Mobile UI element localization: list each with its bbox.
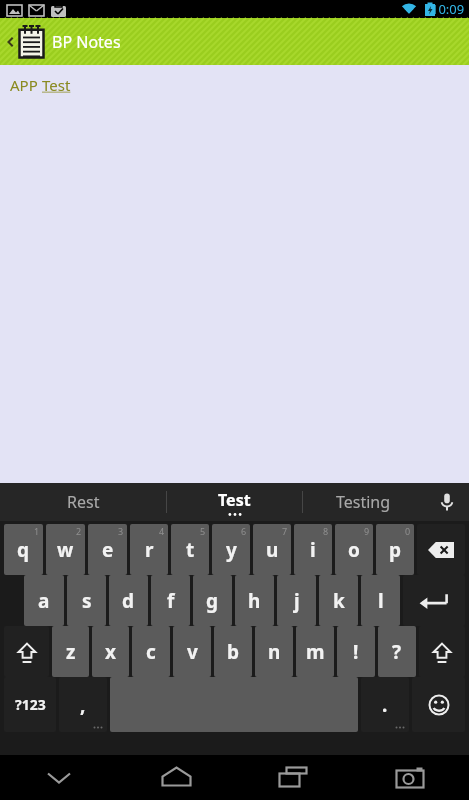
button[interactable]: s <box>67 575 106 626</box>
button[interactable]: ?123 <box>4 677 56 732</box>
button[interactable]: 4 <box>130 524 168 575</box>
button[interactable]: Screenshot <box>352 755 469 800</box>
button[interactable]: . <box>361 677 409 732</box>
staticText: o <box>348 537 360 563</box>
staticText: a <box>38 588 50 614</box>
button[interactable]: 9 <box>335 524 373 575</box>
staticText: m <box>306 639 325 665</box>
staticText: d <box>122 588 135 614</box>
button[interactable]: l <box>361 575 400 626</box>
button[interactable]: 3 <box>88 524 127 575</box>
button[interactable]: Testing <box>303 483 424 521</box>
button[interactable]: m <box>296 626 334 677</box>
staticText: Rest <box>67 491 100 513</box>
staticText: 7 <box>282 525 288 537</box>
staticText: 3 <box>118 525 124 537</box>
staticText: i <box>310 537 316 563</box>
button[interactable]: v <box>173 626 211 677</box>
staticText: v <box>187 639 198 665</box>
button[interactable]: , <box>59 677 107 732</box>
staticText: ?123 <box>15 695 46 714</box>
button[interactable]: Emoji <box>412 677 465 732</box>
staticText: y <box>226 537 237 563</box>
staticText: BP Notes <box>52 31 121 53</box>
staticText: Testing <box>336 491 391 513</box>
button[interactable]: Recent apps <box>235 755 352 800</box>
button[interactable]: a <box>24 575 64 626</box>
button[interactable]: Home <box>118 755 235 800</box>
staticText: APP <box>10 75 42 95</box>
button[interactable]: 6 <box>212 524 250 575</box>
button[interactable]: APP <box>0 65 469 483</box>
button[interactable]: 1 <box>4 524 43 575</box>
button[interactable]: Enter <box>403 575 465 626</box>
button[interactable]: Rest <box>0 483 166 521</box>
button[interactable]: j <box>277 575 316 626</box>
staticText: 10:09 <box>431 0 465 18</box>
staticText: g <box>206 588 219 614</box>
staticText: 5 <box>200 525 206 537</box>
staticText: u <box>266 537 279 563</box>
button[interactable]: Voice input <box>424 483 469 521</box>
button[interactable]: n <box>255 626 293 677</box>
button[interactable]: h <box>235 575 274 626</box>
staticText: 0 <box>405 525 411 537</box>
staticText: f <box>167 588 175 614</box>
button[interactable]: c <box>132 626 170 677</box>
button[interactable]: 7 <box>253 524 291 575</box>
button[interactable]: x <box>92 626 129 677</box>
staticText: , <box>80 692 86 718</box>
staticText: . <box>382 692 388 718</box>
staticText: j <box>294 588 300 614</box>
button[interactable]: ! <box>337 626 375 677</box>
button[interactable]: b <box>214 626 252 677</box>
staticText: b <box>227 639 240 665</box>
staticText: 4 <box>159 525 165 537</box>
button[interactable]: 0 <box>376 524 414 575</box>
staticText: e <box>102 537 114 563</box>
button[interactable]: ? <box>378 626 416 677</box>
staticText: 9 <box>364 525 370 537</box>
button[interactable]: BP Notes <box>0 18 469 65</box>
staticText: l <box>378 588 384 614</box>
staticText: k <box>333 588 345 614</box>
staticText: ? <box>392 639 402 665</box>
staticText: 8 <box>323 525 329 537</box>
staticText: n <box>268 639 281 665</box>
staticText: s <box>82 588 92 614</box>
button[interactable]: f <box>151 575 190 626</box>
staticText: x <box>105 639 116 665</box>
staticText: 1 <box>34 525 40 537</box>
button[interactable]: z <box>52 626 89 677</box>
button[interactable]: Hide keyboard <box>0 755 118 800</box>
button[interactable]: Shift <box>4 626 49 677</box>
staticText: Test <box>42 75 71 95</box>
button[interactable]: k <box>319 575 358 626</box>
staticText: q <box>17 537 30 563</box>
button[interactable]: Shift <box>419 626 465 677</box>
staticText: h <box>248 588 261 614</box>
button[interactable]: 5 <box>171 524 209 575</box>
button[interactable]: g <box>193 575 232 626</box>
staticText: p <box>389 537 402 563</box>
staticText: r <box>145 537 154 563</box>
staticText: 2 <box>76 525 82 537</box>
staticText: c <box>146 639 156 665</box>
button[interactable]: 2 <box>46 524 85 575</box>
button[interactable]: 8 <box>294 524 332 575</box>
staticText: ! <box>353 639 359 665</box>
staticText: Test <box>218 489 251 511</box>
button[interactable]: d <box>109 575 148 626</box>
staticText: t <box>186 537 195 563</box>
staticText: z <box>66 639 76 665</box>
button[interactable]: Test <box>167 483 302 521</box>
button[interactable]: Backspace <box>417 524 465 575</box>
staticText: w <box>57 537 74 563</box>
staticText: 6 <box>241 525 247 537</box>
